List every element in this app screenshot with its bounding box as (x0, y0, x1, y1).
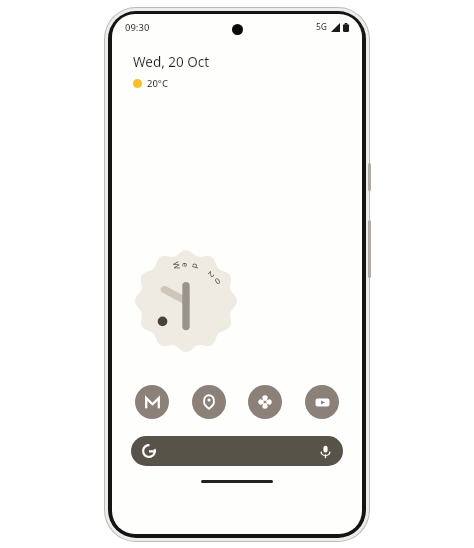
staticText: 0 (213, 276, 223, 288)
staticText: W (171, 260, 183, 271)
staticText: 09:30 (125, 21, 150, 34)
staticText: d (190, 262, 202, 270)
button[interactable]: Gmail (135, 385, 169, 419)
staticText: 2 (206, 269, 217, 280)
staticText: Wed, 20 Oct (133, 53, 210, 71)
button[interactable]: Photos (248, 385, 282, 419)
staticText: 5G (316, 21, 328, 33)
button[interactable]: YouTube (305, 385, 339, 419)
button[interactable]: Clock widget, Wed 20 (135, 250, 237, 352)
staticText: e (180, 262, 191, 268)
button[interactable]: Search (131, 436, 343, 466)
staticText: 20°C (147, 77, 168, 90)
button[interactable]: Maps (192, 385, 226, 419)
